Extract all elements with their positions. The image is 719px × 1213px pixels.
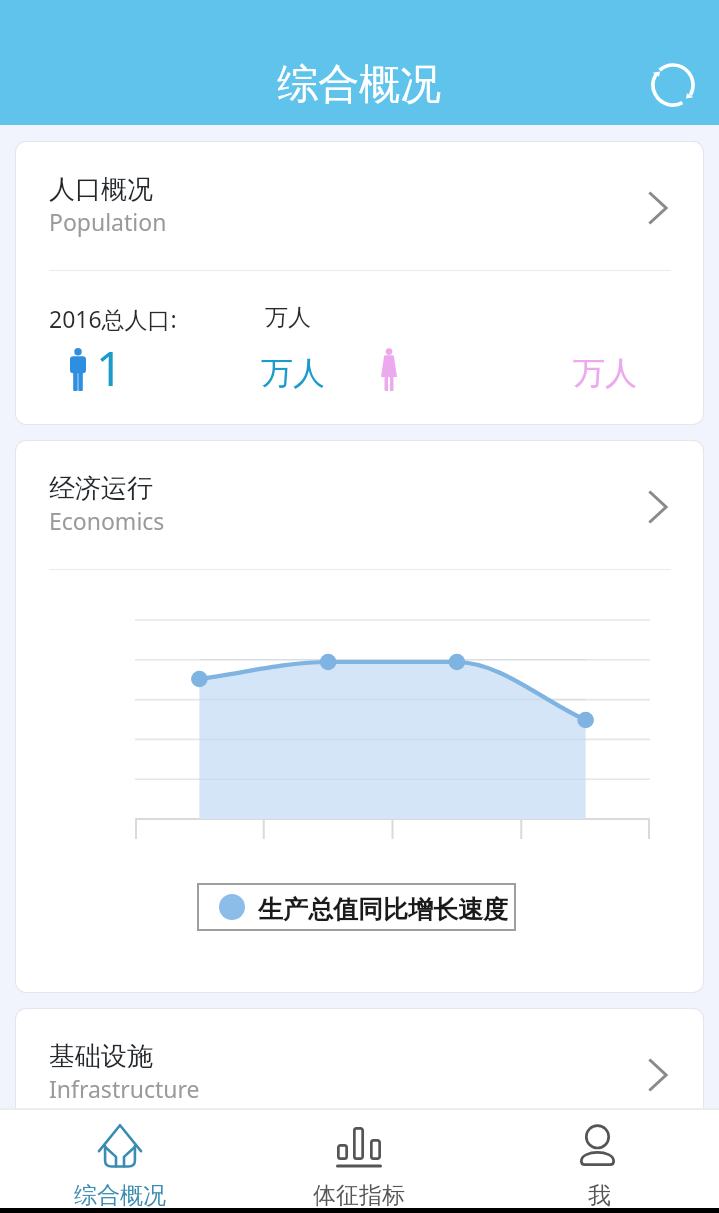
button[interactable]: 基础设施 <box>16 1009 703 1137</box>
staticText: 万人 <box>573 353 637 393</box>
button[interactable]: Refresh <box>645 57 701 113</box>
staticText: 生产总值同比增长速度 <box>258 894 508 925</box>
staticText: Economics <box>49 505 165 536</box>
button[interactable]: 生产总值同比增长速度 <box>197 883 516 931</box>
button[interactable]: 人口概况 <box>16 142 703 270</box>
staticText: 人口概况 <box>49 173 153 206</box>
staticText: 经济运行 <box>49 472 153 505</box>
button[interactable]: 经济运行 <box>16 441 703 569</box>
staticText: 万人 <box>265 303 311 332</box>
button[interactable]: 我 <box>479 1110 719 1208</box>
staticText: 1 <box>96 336 123 400</box>
staticText: 2016总人口: <box>49 303 177 334</box>
staticText: 综合概况 <box>277 59 441 111</box>
staticText: 我 <box>588 1181 611 1208</box>
staticText: 基础设施 <box>49 1040 153 1073</box>
button[interactable]: 体征指标 <box>239 1110 479 1208</box>
staticText: Infrastructure <box>49 1073 200 1104</box>
staticText: Population <box>49 206 167 237</box>
button[interactable]: 综合概况 <box>0 1110 239 1208</box>
staticText: 万人 <box>261 353 325 393</box>
staticText: 综合概况 <box>74 1181 166 1208</box>
staticText: 体征指标 <box>313 1181 405 1208</box>
